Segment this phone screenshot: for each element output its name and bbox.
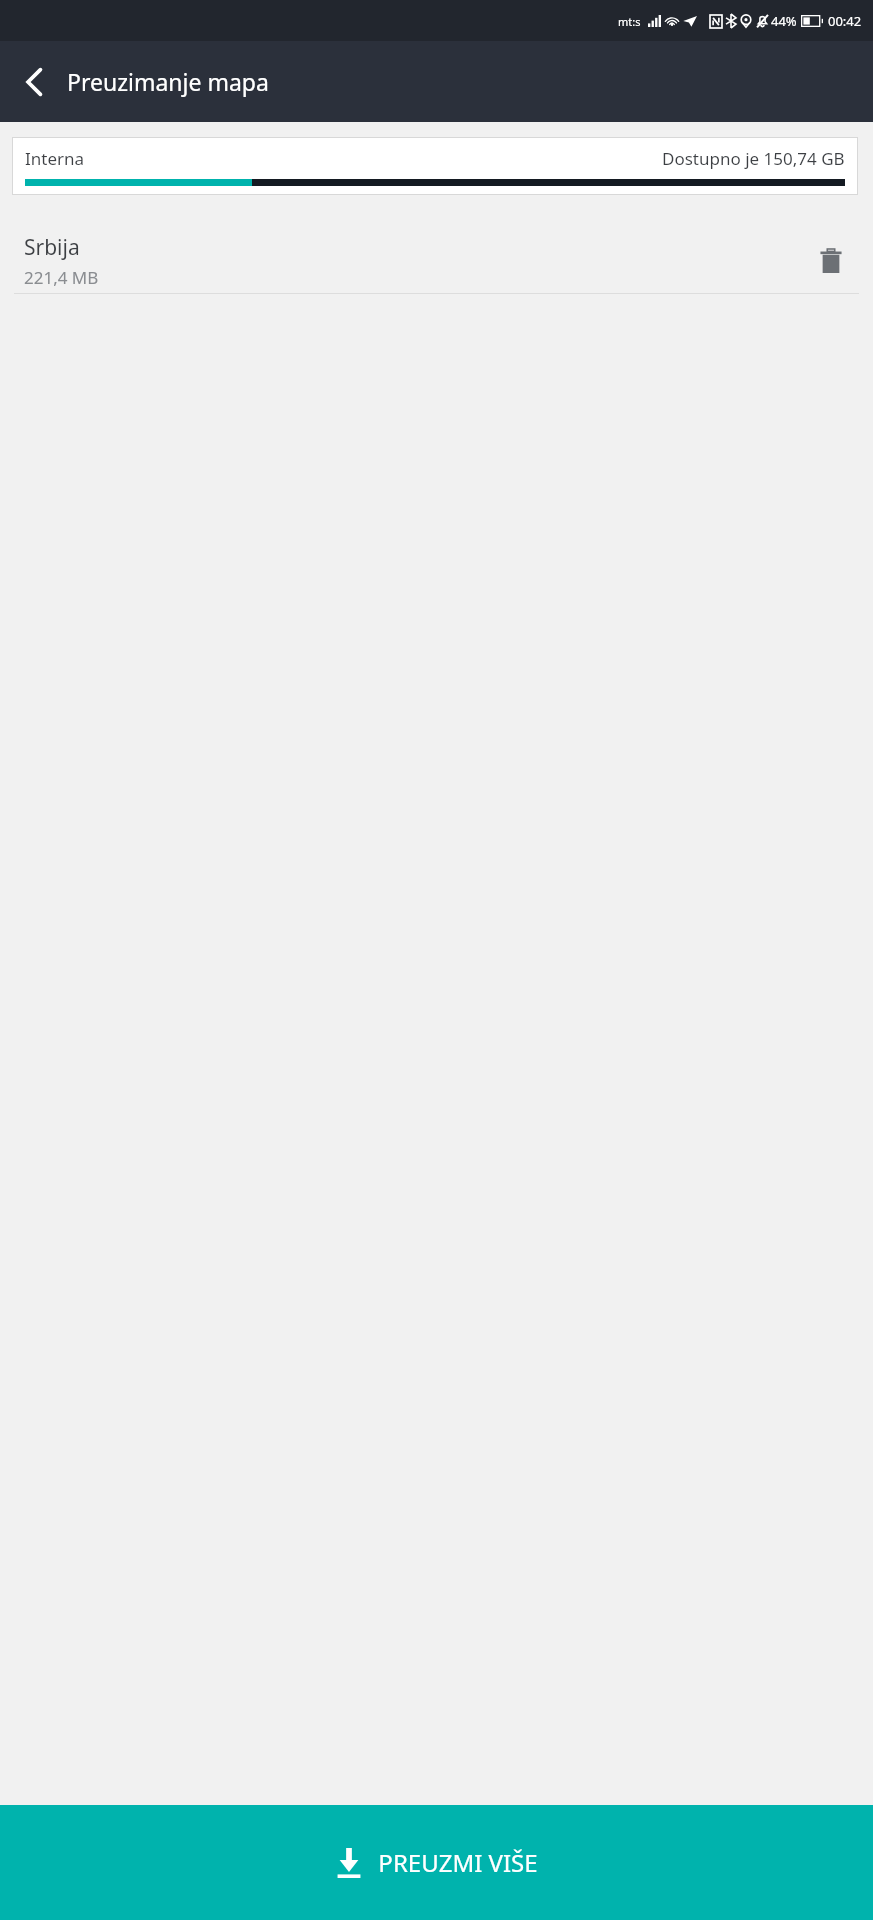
button[interactable]: Srbija [0,229,873,293]
staticText: Srbija [24,233,80,262]
staticText: 00:42 [828,12,862,30]
staticText: 221,4 MB [24,266,99,289]
button[interactable]: Back [14,62,54,102]
staticText: PREUZMI VIŠE [378,1846,538,1879]
staticText: mt:s [618,14,641,29]
staticText: Interna [25,147,85,170]
staticText: Dostupno je 150,74 GB [662,147,845,170]
staticText: 44% [771,12,797,30]
button[interactable]: PREUZMI VIŠE [0,1805,873,1920]
staticText: Preuzimanje mapa [67,66,269,97]
button[interactable]: Delete [811,241,851,281]
button[interactable]: Interna [12,137,858,195]
